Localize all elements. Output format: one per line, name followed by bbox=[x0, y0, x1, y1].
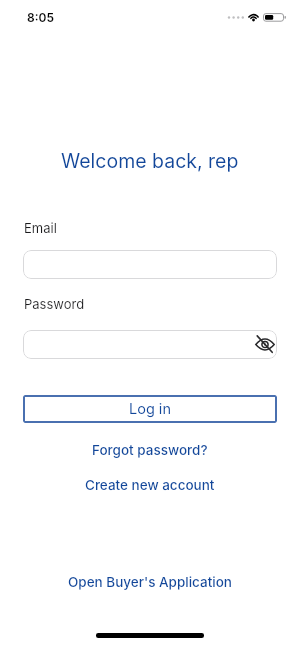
button[interactable]: Forgot password? bbox=[92, 442, 208, 458]
button[interactable] bbox=[23, 250, 277, 279]
button[interactable] bbox=[23, 330, 277, 359]
staticText: 8:05 bbox=[27, 10, 54, 25]
button[interactable]: Log in bbox=[23, 395, 277, 423]
button[interactable]: Open Buyer's Application bbox=[68, 574, 232, 590]
button[interactable]: Create new account bbox=[85, 477, 215, 493]
staticText: Log in bbox=[129, 400, 171, 418]
staticText: Welcome back, rep bbox=[61, 149, 239, 173]
staticText: Password bbox=[24, 296, 85, 312]
staticText: Email bbox=[24, 220, 57, 236]
